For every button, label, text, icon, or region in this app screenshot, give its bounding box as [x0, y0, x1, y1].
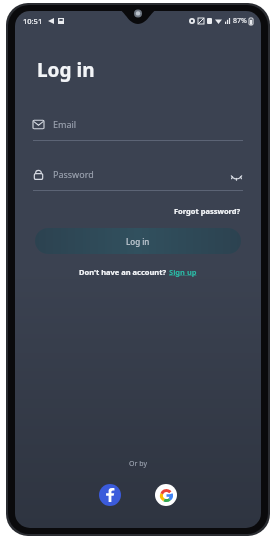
button[interactable]: Show password: [229, 167, 243, 181]
staticText: Password: [53, 168, 94, 180]
staticText: Log in: [126, 236, 150, 247]
staticText: 87%: [233, 16, 247, 26]
button[interactable]: Email: [33, 113, 243, 135]
staticText: Sign up: [169, 267, 197, 277]
button[interactable]: Sign in with Facebook: [99, 484, 121, 506]
staticText: Log in: [37, 57, 95, 83]
button[interactable]: Password: [33, 163, 243, 185]
staticText: Email: [53, 118, 77, 130]
staticText: 10:51: [23, 16, 43, 26]
button[interactable]: Sign in with Google: [155, 484, 177, 506]
button[interactable]: Log in: [35, 228, 241, 254]
staticText: Forgot password?: [174, 206, 241, 216]
staticText: Don't have an account?: [79, 267, 169, 277]
button[interactable]: Sign up: [169, 267, 197, 277]
button[interactable]: Forgot password?: [172, 203, 243, 219]
staticText: Or by: [15, 459, 261, 469]
